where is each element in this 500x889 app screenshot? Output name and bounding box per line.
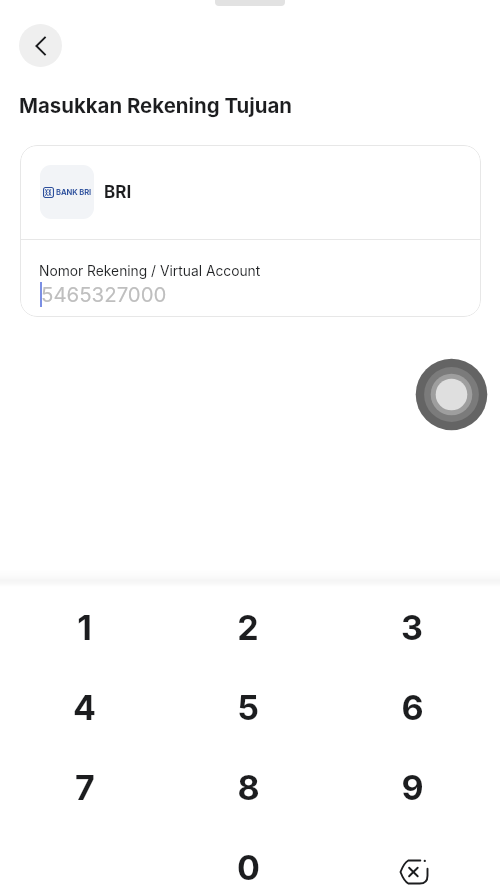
- staticText: 8: [237, 767, 260, 808]
- staticText: 0: [237, 847, 260, 888]
- staticText: 5465327000: [41, 282, 167, 307]
- staticText: 4: [73, 687, 96, 728]
- staticText: 3: [401, 607, 423, 648]
- staticText: 2: [237, 607, 259, 648]
- button[interactable]: Back: [19, 24, 62, 67]
- staticText: BRI: [104, 182, 132, 203]
- button[interactable]: 5: [166, 667, 330, 747]
- button[interactable]: 1: [3, 587, 166, 667]
- button[interactable]: 9: [330, 747, 494, 827]
- button[interactable]: 0: [166, 827, 330, 889]
- staticText: 6: [401, 687, 424, 728]
- button[interactable]: Nomor Rekening / Virtual Account: [20, 240, 481, 316]
- button[interactable]: 8: [166, 747, 330, 827]
- staticText: 7: [75, 767, 95, 808]
- staticText: Nomor Rekening / Virtual Account: [39, 263, 261, 280]
- staticText: 5: [237, 687, 259, 728]
- staticText: Masukkan Rekening Tujuan: [19, 93, 292, 118]
- staticText: BANK BRI: [56, 188, 92, 197]
- other: Touch indicator: [415, 358, 488, 431]
- staticText: 1: [77, 607, 92, 648]
- staticText: 9: [401, 767, 424, 808]
- button[interactable]: 2: [166, 587, 330, 667]
- button[interactable]: Backspace: [330, 827, 494, 889]
- button[interactable]: 3: [330, 587, 494, 667]
- button[interactable]: 4: [3, 667, 166, 747]
- button[interactable]: BANK BRI: [20, 145, 481, 239]
- button[interactable]: 7: [3, 747, 166, 827]
- button[interactable]: 6: [330, 667, 494, 747]
